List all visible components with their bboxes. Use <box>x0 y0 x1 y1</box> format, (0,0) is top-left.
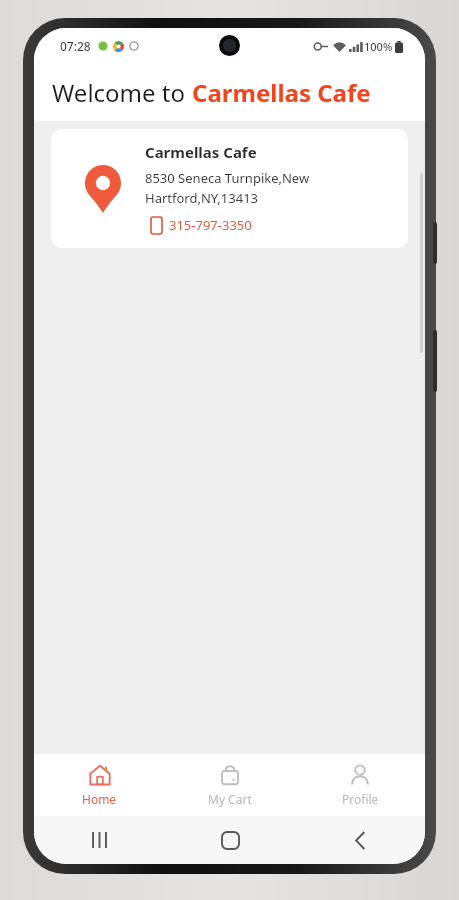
button[interactable]: Profile <box>295 754 425 816</box>
staticText: 315-797-3350 <box>169 216 252 234</box>
staticText: Welcome to <box>52 76 192 109</box>
staticText: Profile <box>342 791 379 807</box>
staticText: 07:28 <box>60 38 91 54</box>
button[interactable]: Home <box>165 816 295 864</box>
button[interactable]: Home <box>34 754 165 816</box>
button[interactable]: My Cart <box>165 754 295 816</box>
button[interactable]: Recents <box>34 816 165 864</box>
staticText: Carmellas Cafe <box>192 76 371 109</box>
staticText: Home <box>82 791 117 807</box>
other: Location <box>85 165 121 213</box>
button[interactable]: 315-797-3350 <box>145 215 256 235</box>
button[interactable]: Location <box>51 129 408 248</box>
staticText: Carmellas Cafe <box>145 142 257 162</box>
staticText: 100% <box>364 39 393 54</box>
staticText: Hartford,NY,13413 <box>145 189 259 207</box>
staticText: My Cart <box>208 791 252 807</box>
staticText: 8530 Seneca Turnpike,New <box>145 169 310 187</box>
button[interactable]: Back <box>295 816 425 864</box>
